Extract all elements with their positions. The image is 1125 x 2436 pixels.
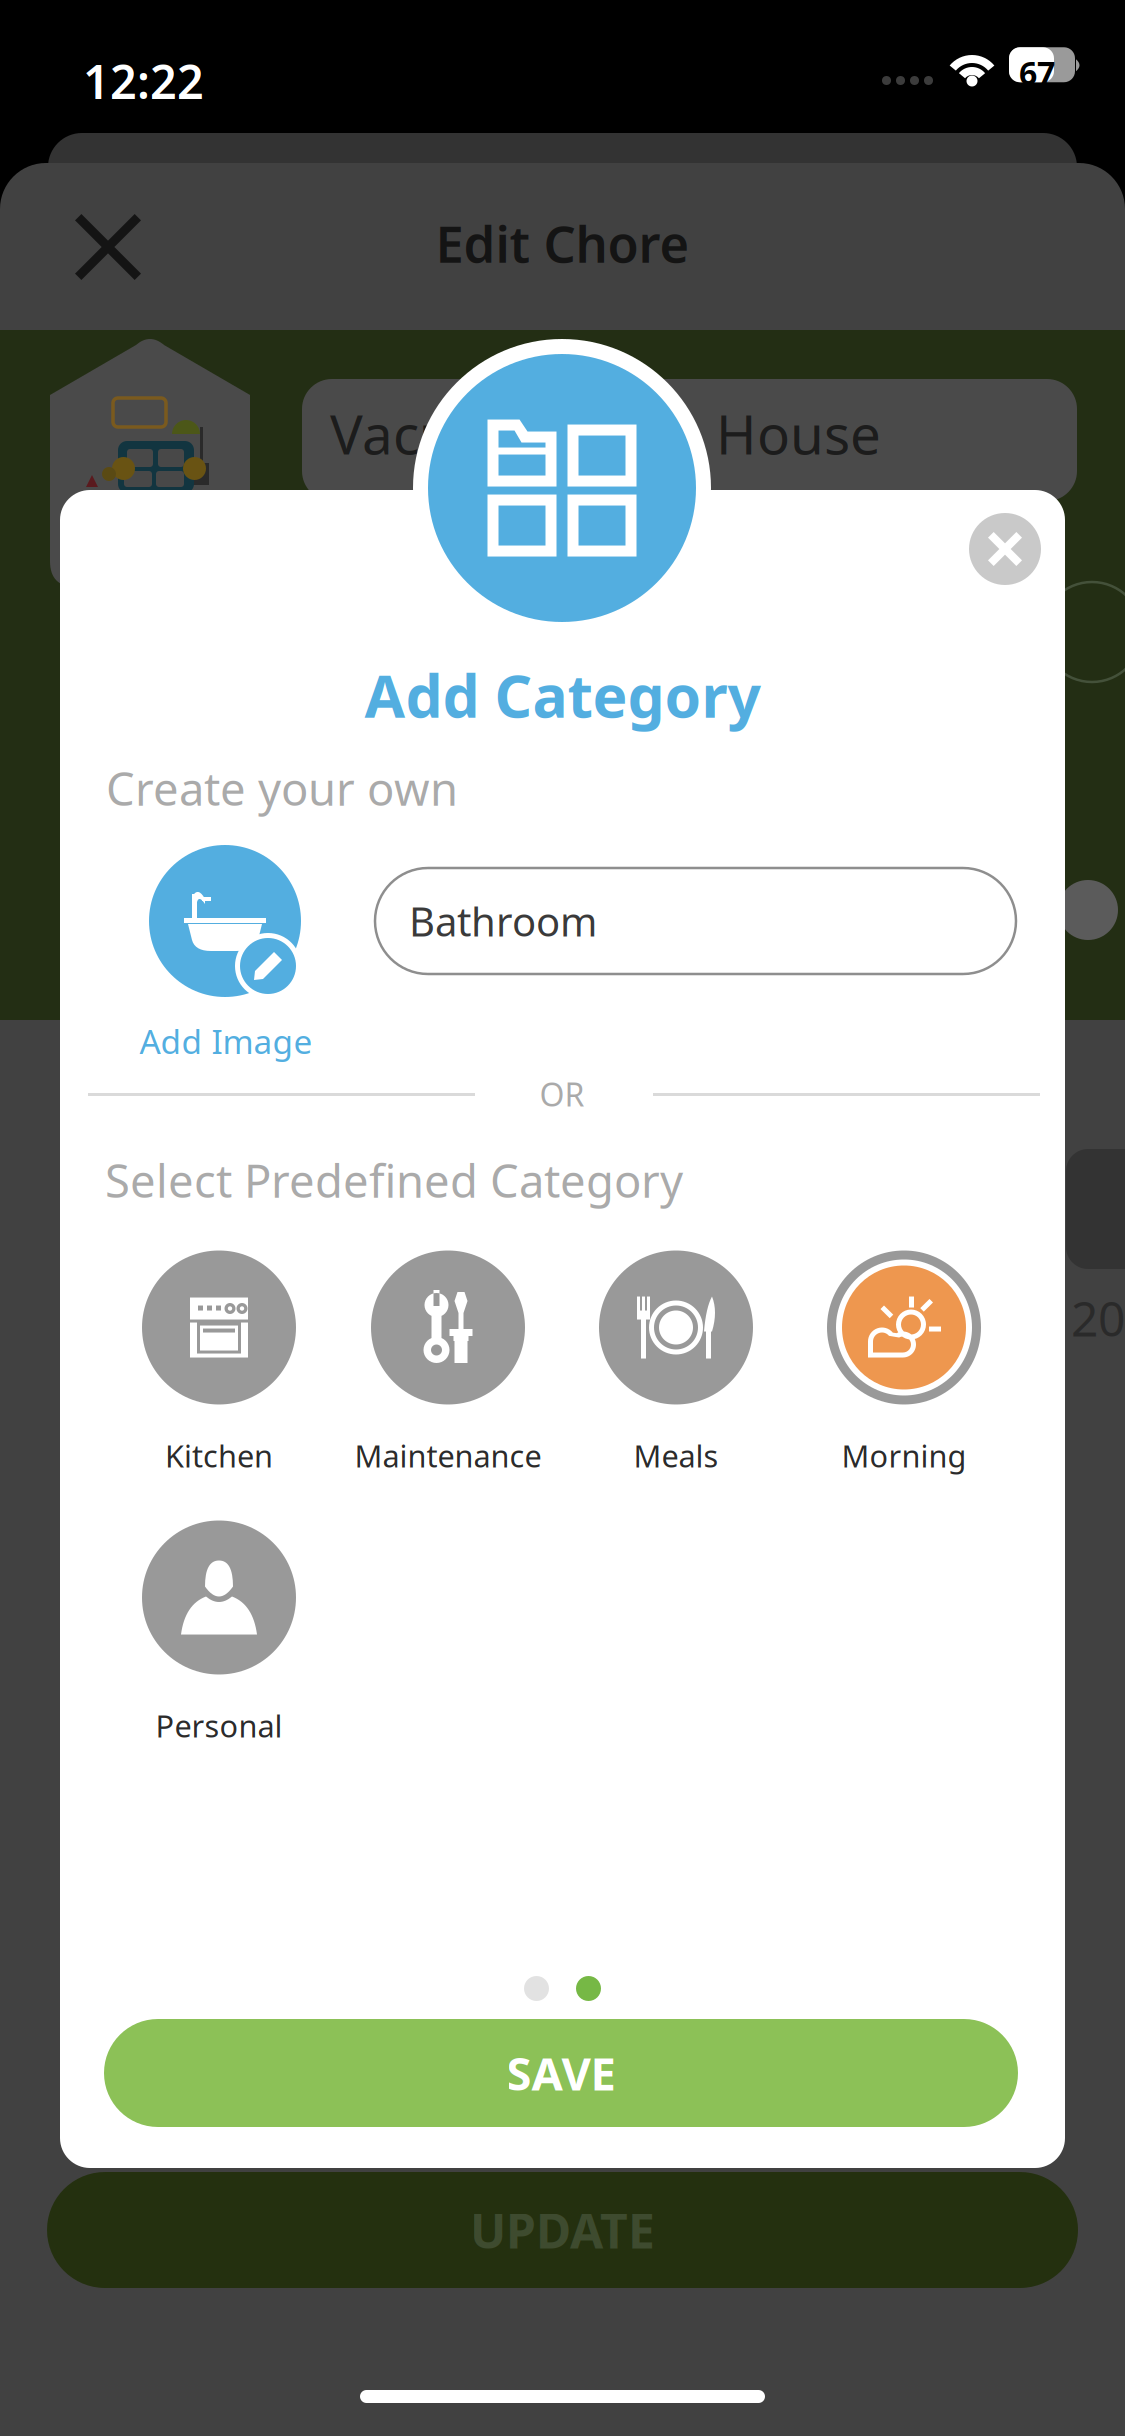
staticText: Add Category [364, 656, 760, 734]
button[interactable]: Maintenance [334, 1241, 562, 1491]
staticText: 12:22 [83, 50, 204, 112]
button[interactable]: SAVE [104, 2019, 1018, 2127]
staticText: SAVE [506, 2043, 615, 2103]
staticText: Personal [155, 1705, 282, 1746]
staticText: Maintenance [354, 1435, 541, 1476]
staticText: OR [539, 1073, 584, 1115]
staticText: UPDATE [470, 2198, 655, 2262]
button[interactable]: Add Image [149, 845, 329, 1085]
staticText: Morning [841, 1435, 966, 1476]
staticText: Add Image [139, 1019, 312, 1063]
staticText: Meals [633, 1435, 718, 1476]
button[interactable]: Personal [105, 1511, 333, 1761]
button[interactable]: Meals [562, 1241, 790, 1491]
staticText: Edit Chore [435, 209, 689, 277]
button[interactable]: Bathroom [375, 868, 1016, 974]
staticText: 67 [1019, 51, 1055, 94]
button[interactable]: Kitchen [105, 1241, 333, 1491]
button[interactable]: UPDATE [47, 2172, 1078, 2288]
button[interactable]: Close Edit Chore [43, 182, 173, 312]
staticText: Select Predefined Category [105, 1150, 683, 1210]
staticText: 20 [1071, 1286, 1125, 1350]
staticText: Kitchen [165, 1435, 273, 1476]
staticText: Bathroom [409, 894, 597, 947]
button[interactable]: Morning [790, 1241, 1018, 1491]
button[interactable]: Close [969, 513, 1041, 585]
staticText: Vacuum Entire House [330, 397, 881, 470]
staticText: Create your own [106, 758, 458, 818]
